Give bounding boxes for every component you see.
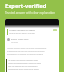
staticText: Answer verified by expert [9, 29, 36, 32]
staticText: adipiscing elit sed do eiusmod tempor [7, 50, 45, 53]
staticText: Expert name here [11, 38, 29, 41]
staticText: Expert-verified [5, 2, 47, 10]
staticText: Lorem ipsum dolor sit amet [9, 32, 35, 35]
staticText: consequat duis aute irure dolor [8, 68, 39, 71]
staticText: verified [11, 41, 19, 44]
staticText: nostrud exercitation ullamco labo [8, 62, 41, 65]
staticText: Trusted answer with clear explanation [5, 11, 55, 15]
staticText: Lorem ipsum dolor sit amet consectetur [7, 47, 47, 50]
staticText: incididunt ut labore et dolore magna [7, 53, 44, 56]
staticText: Ut enim ad minim veniam quis [8, 59, 39, 62]
staticText: nisi ut aliquip ex ea commodo [8, 65, 38, 68]
